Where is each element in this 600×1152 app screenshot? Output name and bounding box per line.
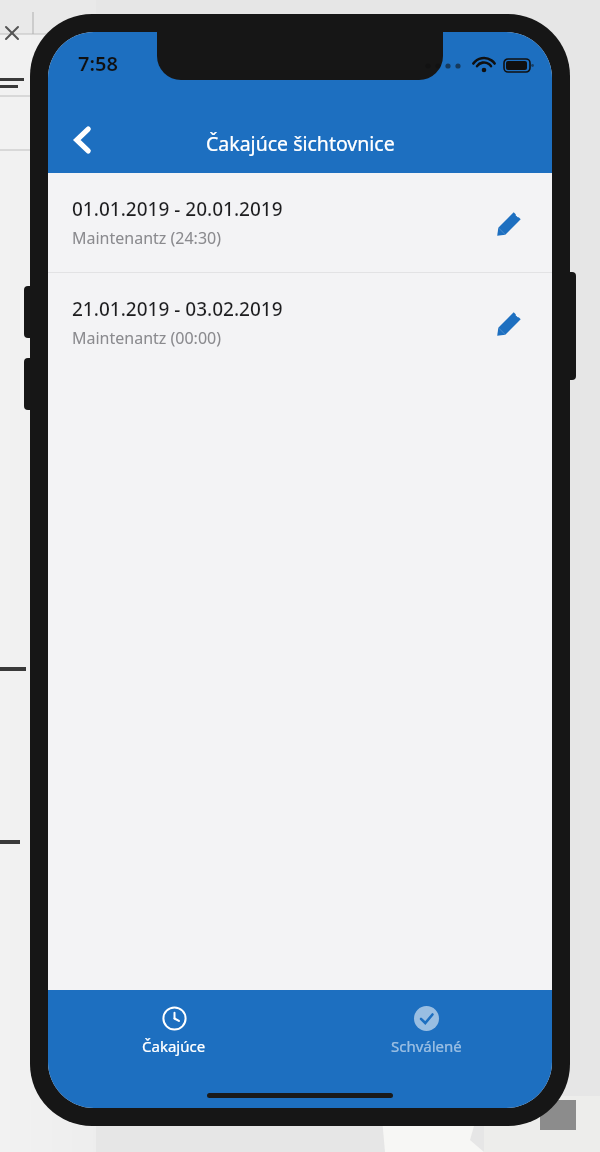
button[interactable]: Edit [482,296,536,350]
staticText: 01.01.2019 - 20.01.2019 [72,196,283,222]
staticText: Maintenantz (00:00) [72,327,222,349]
staticText: Schválené [391,1036,462,1056]
button[interactable]: Čakajúce [48,1002,300,1060]
button[interactable]: Back [54,111,112,169]
staticText: Čakajúce [142,1036,206,1056]
staticText: Čakajúce šichtovnice [206,130,395,157]
button[interactable]: Schválené [300,1002,552,1060]
button[interactable]: Edit [482,196,536,250]
button[interactable]: 21.01.2019 - 03.02.2019 [48,273,552,372]
button[interactable]: 01.01.2019 - 20.01.2019 [48,173,552,272]
staticText: Maintenantz (24:30) [72,227,222,249]
staticText: 7:58 [78,50,118,77]
staticText: 21.01.2019 - 03.02.2019 [72,296,283,322]
